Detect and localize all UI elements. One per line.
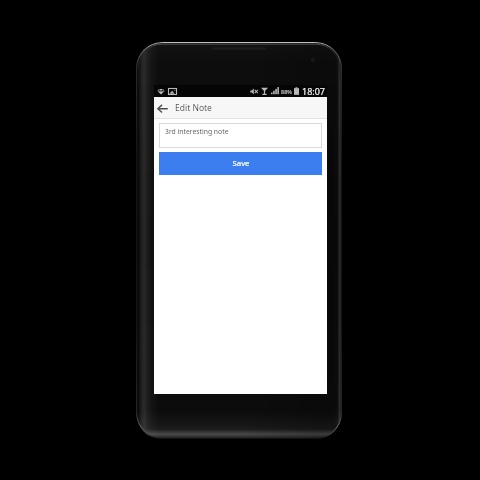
staticText: Save	[232, 158, 250, 169]
staticText: 18:07	[302, 85, 326, 97]
button[interactable]: 3rd interesting note	[159, 123, 322, 148]
button[interactable]: Save	[159, 152, 322, 175]
staticText: 88%	[281, 88, 292, 95]
button[interactable]: Back	[154, 97, 170, 119]
staticText: Edit Note	[175, 102, 212, 114]
staticText: 3rd interesting note	[165, 127, 229, 136]
